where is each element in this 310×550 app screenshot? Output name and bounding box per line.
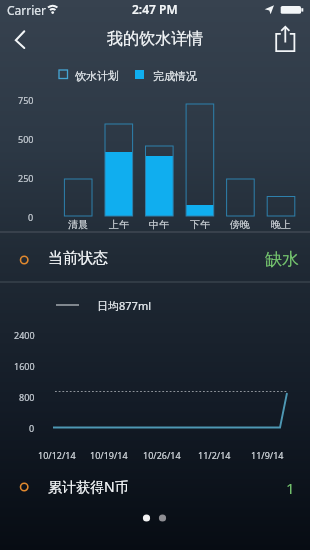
staticText: 饮水计划 — [75, 69, 119, 83]
staticText: 2:47 PM — [132, 1, 178, 17]
staticText: 10/12/14 — [38, 449, 76, 461]
button[interactable] — [8, 26, 34, 50]
staticText: 晚上 — [271, 218, 291, 231]
staticText: 11/2/14 — [198, 449, 231, 461]
staticText: 傍晚 — [230, 218, 250, 231]
staticText: 我的饮水详情 — [107, 29, 203, 49]
staticText: 1 — [286, 478, 295, 498]
staticText: Carrier — [7, 2, 47, 18]
button[interactable] — [0, 233, 310, 282]
staticText: 0 — [28, 211, 34, 223]
staticText: 上午 — [109, 218, 129, 231]
staticText: 中午 — [149, 218, 169, 231]
staticText: 250 — [18, 172, 34, 184]
staticText: 800 — [19, 391, 35, 403]
staticText: 清晨 — [68, 218, 88, 231]
staticText: 500 — [18, 133, 34, 145]
staticText: 1600 — [14, 360, 35, 372]
button[interactable] — [0, 468, 310, 508]
button[interactable] — [272, 25, 302, 51]
staticText: 完成情况 — [153, 69, 197, 83]
staticText: 下午 — [190, 218, 210, 231]
staticText: 10/26/14 — [143, 449, 181, 461]
staticText: 当前状态 — [48, 249, 108, 268]
staticText: 2400 — [14, 329, 35, 341]
staticText: 缺水 — [265, 249, 299, 270]
staticText: 750 — [18, 94, 34, 106]
staticText: 11/9/14 — [251, 449, 284, 461]
staticText: 0 — [29, 422, 35, 434]
staticText: 10/19/14 — [90, 449, 128, 461]
staticText: 日均877ml — [97, 298, 151, 313]
staticText: 累计获得N币 — [48, 477, 129, 496]
